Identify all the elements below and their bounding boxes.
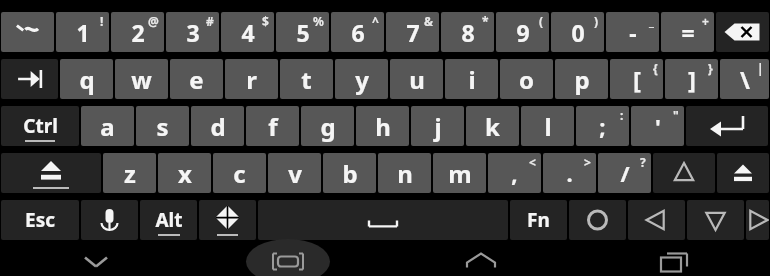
button[interactable]: p xyxy=(555,59,608,99)
staticText: < xyxy=(529,154,536,170)
button[interactable]: Right xyxy=(746,200,769,240)
button[interactable]: m xyxy=(433,153,486,193)
button[interactable]: 0 xyxy=(551,12,604,52)
button[interactable]: Recents xyxy=(577,247,770,276)
button[interactable]: Symbols xyxy=(199,200,256,240)
button[interactable]: b xyxy=(323,153,376,193)
button[interactable]: Up xyxy=(653,153,715,193)
button[interactable]: Enter xyxy=(686,106,768,146)
staticText: ' xyxy=(655,111,661,141)
button[interactable]: Ctrl xyxy=(1,106,79,146)
button[interactable]: ] xyxy=(665,59,718,99)
button[interactable]: Backspace xyxy=(716,12,769,52)
staticText: { xyxy=(653,60,658,76)
button[interactable]: u xyxy=(390,59,443,99)
button[interactable]: z xyxy=(103,153,156,193)
button[interactable]: t xyxy=(280,59,333,99)
button[interactable]: r xyxy=(225,59,278,99)
button[interactable]: i xyxy=(445,59,498,99)
button[interactable]: [ xyxy=(610,59,663,99)
button[interactable]: , xyxy=(488,153,541,193)
button[interactable]: 2 xyxy=(111,12,164,52)
button[interactable]: 5 xyxy=(276,12,329,52)
button[interactable]: s xyxy=(136,106,189,146)
button[interactable]: Switch keyboard xyxy=(192,247,384,276)
button[interactable]: = xyxy=(661,12,714,52)
staticText: } xyxy=(708,60,713,76)
button[interactable]: 7 xyxy=(386,12,439,52)
staticText: $ xyxy=(262,13,269,29)
button[interactable]: Left xyxy=(628,200,685,240)
button[interactable]: c xyxy=(213,153,266,193)
button[interactable]: e xyxy=(170,59,223,99)
button[interactable]: Hide keyboard xyxy=(0,247,192,276)
staticText: = xyxy=(681,17,695,48)
button[interactable]: ' xyxy=(631,106,684,146)
staticText: % xyxy=(313,13,324,29)
button[interactable]: Alt xyxy=(140,200,197,240)
staticText: a xyxy=(100,110,115,143)
button[interactable]: Home xyxy=(384,247,577,276)
staticText: n xyxy=(397,157,413,190)
staticText: # xyxy=(206,13,214,29)
button[interactable]: 1 xyxy=(56,12,109,52)
staticText: Esc xyxy=(25,207,55,233)
staticText: Ctrl xyxy=(23,113,58,139)
staticText: b xyxy=(342,157,358,190)
button[interactable]: Shift right xyxy=(717,153,769,193)
button[interactable]: 8 xyxy=(441,12,494,52)
staticText: 6 xyxy=(351,17,365,48)
staticText: u xyxy=(409,63,425,96)
button[interactable]: Voice input xyxy=(81,200,138,240)
button[interactable]: w xyxy=(115,59,168,99)
button[interactable]: 4 xyxy=(221,12,274,52)
button[interactable]: g xyxy=(301,106,354,146)
button[interactable]: j xyxy=(411,106,464,146)
staticText: f xyxy=(268,110,278,143)
staticText: o xyxy=(519,63,534,96)
button[interactable]: - xyxy=(606,12,659,52)
button[interactable]: h xyxy=(356,106,409,146)
button[interactable]: / xyxy=(598,153,651,193)
staticText: 1 xyxy=(76,17,90,48)
button[interactable]: y xyxy=(335,59,388,99)
button[interactable]: ; xyxy=(576,106,629,146)
button[interactable]: n xyxy=(378,153,431,193)
button[interactable]: Circle xyxy=(569,200,626,240)
staticText: Alt xyxy=(155,207,183,233)
button[interactable]: Fn xyxy=(510,200,567,240)
button[interactable]: . xyxy=(543,153,596,193)
button[interactable]: x xyxy=(158,153,211,193)
button[interactable]: \ xyxy=(720,59,769,99)
button[interactable]: d xyxy=(191,106,244,146)
staticText: ; xyxy=(599,111,606,141)
button[interactable]: v xyxy=(268,153,321,193)
button[interactable]: Space xyxy=(258,200,508,240)
button[interactable]: a xyxy=(81,106,134,146)
button[interactable]: q xyxy=(60,59,113,99)
button[interactable]: Backtick tilde xyxy=(1,12,54,52)
button[interactable]: Shift xyxy=(1,153,101,193)
button[interactable]: Esc xyxy=(1,200,79,240)
staticText: : xyxy=(620,107,624,123)
staticText: 9 xyxy=(516,17,530,48)
button[interactable]: 3 xyxy=(166,12,219,52)
button[interactable]: l xyxy=(521,106,574,146)
staticText: t xyxy=(301,63,312,96)
staticText: & xyxy=(424,13,434,29)
staticText: 2 xyxy=(131,17,145,48)
staticText: " xyxy=(673,107,679,123)
button[interactable]: Down xyxy=(687,200,744,240)
button[interactable]: 9 xyxy=(496,12,549,52)
staticText: , xyxy=(511,158,518,188)
button[interactable]: k xyxy=(466,106,519,146)
staticText: 3 xyxy=(186,17,200,48)
button[interactable]: o xyxy=(500,59,553,99)
button[interactable]: f xyxy=(246,106,299,146)
staticText: x xyxy=(178,157,192,190)
button[interactable]: Tab xyxy=(1,59,58,99)
staticText: c xyxy=(233,157,246,190)
staticText: s xyxy=(156,110,169,143)
staticText: w xyxy=(131,63,152,96)
button[interactable]: 6 xyxy=(331,12,384,52)
